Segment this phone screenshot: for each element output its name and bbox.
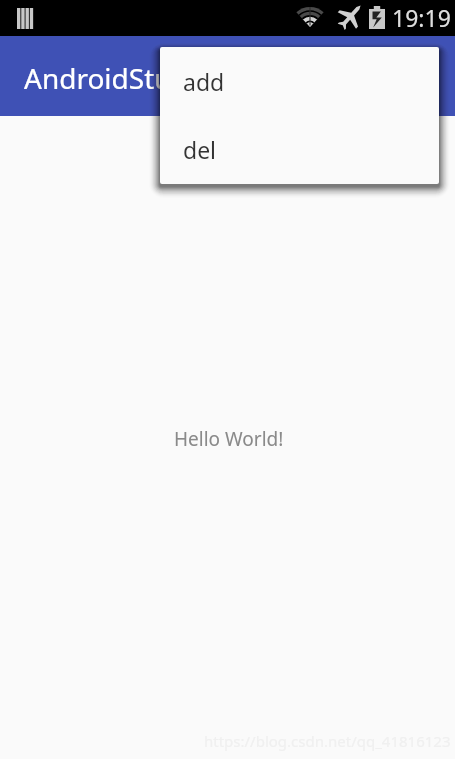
- button[interactable]: add: [160, 47, 439, 115]
- staticText: https://blog.csdn.net/qq_41816123: [204, 731, 451, 751]
- other: Notifications: [17, 8, 34, 29]
- staticText: Hello World!: [174, 426, 284, 452]
- staticText: del: [183, 134, 217, 165]
- staticText: AndroidStudio: [24, 59, 213, 97]
- other: Battery charging: [369, 6, 385, 29]
- other: Wi-Fi: [297, 7, 323, 27]
- staticText: add: [183, 66, 225, 97]
- staticText: 19:19: [392, 2, 451, 33]
- other: Airplane mode: [340, 5, 362, 27]
- button[interactable]: del: [160, 115, 439, 183]
- button[interactable]: More options: [399, 36, 455, 116]
